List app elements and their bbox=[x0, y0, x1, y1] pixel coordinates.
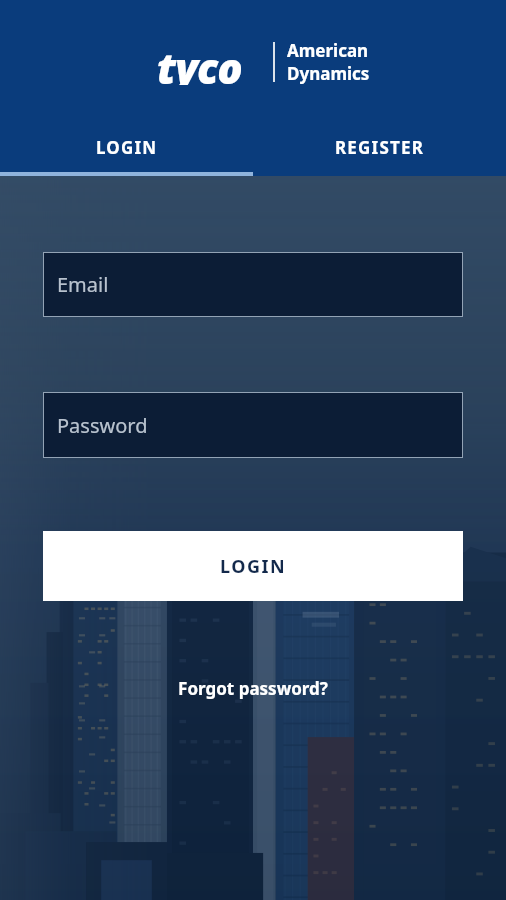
button[interactable]: Email bbox=[43, 252, 463, 317]
button[interactable]: Password bbox=[43, 392, 463, 458]
staticText: American bbox=[287, 39, 369, 62]
button[interactable]: Forgot password? bbox=[43, 677, 463, 700]
staticText: tyco bbox=[157, 39, 242, 85]
staticText: Forgot password? bbox=[178, 677, 328, 700]
button[interactable]: REGISTER bbox=[253, 118, 506, 176]
button[interactable]: LOGIN bbox=[0, 118, 253, 176]
staticText: Dynamics bbox=[287, 62, 370, 85]
button[interactable]: LOGIN bbox=[43, 531, 463, 601]
staticText: LOGIN bbox=[96, 136, 158, 159]
staticText: REGISTER bbox=[335, 136, 425, 159]
staticText: LOGIN bbox=[220, 554, 287, 579]
staticText: Password bbox=[57, 412, 148, 439]
staticText: Email bbox=[57, 271, 109, 298]
